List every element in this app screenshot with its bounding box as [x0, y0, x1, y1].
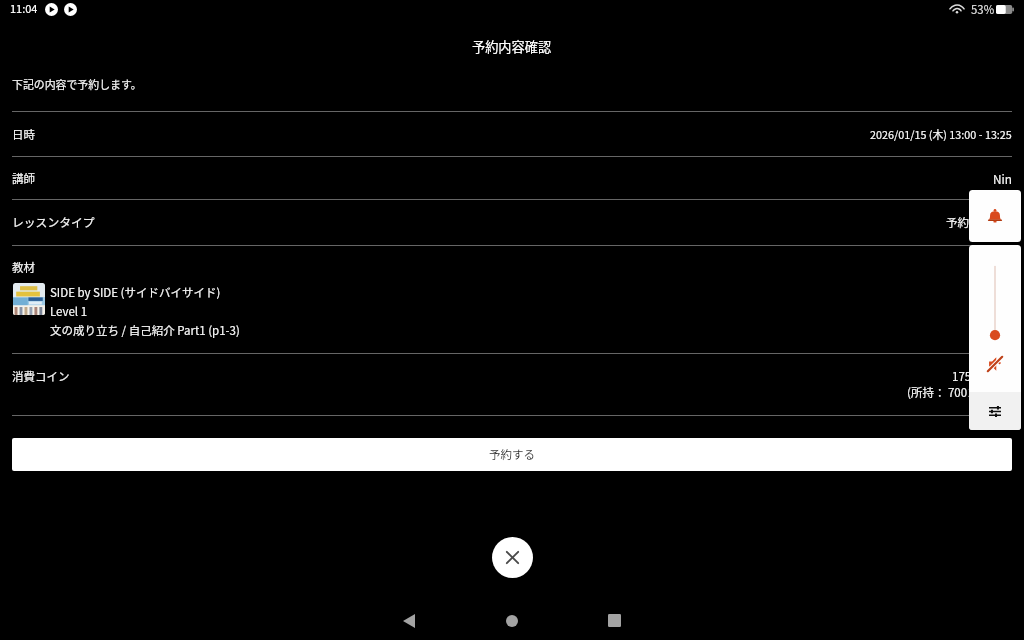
staticText: 2026/01/15 (木) 13:00 - 13:25: [870, 126, 1012, 142]
staticText: 予約内容確認: [472, 37, 552, 56]
staticText: Level 1: [50, 303, 88, 320]
staticText: (所持： 700コイン): [907, 384, 1006, 401]
button[interactable]: 予約する: [12, 438, 1012, 471]
staticText: 教材: [12, 259, 35, 276]
staticText: 下記の内容で予約します。: [12, 76, 142, 92]
staticText: 53%: [971, 1, 995, 18]
staticText: Nin: [993, 170, 1012, 187]
button[interactable]: Recent apps: [563, 600, 665, 640]
staticText: 消費コイン: [12, 368, 70, 385]
staticText: 講師: [12, 170, 35, 187]
staticText: レッスンタイプ: [12, 213, 95, 230]
button[interactable]: Sound settings: [969, 392, 1021, 430]
staticText: SIDE by SIDE (サイドバイサイド): [50, 284, 221, 301]
staticText: 予約レッスン: [946, 214, 1015, 231]
staticText: 11:04: [10, 0, 38, 16]
button[interactable]: Back: [358, 600, 460, 640]
button[interactable]: Volume slider: [969, 245, 1021, 355]
staticText: 175コイン: [952, 368, 1006, 385]
staticText: 文の成り立ち / 自己紹介 Part1 (p1-3): [50, 322, 240, 339]
staticText: 予約する: [489, 446, 535, 463]
staticText: 日時: [12, 126, 35, 143]
button[interactable]: Home: [461, 600, 563, 640]
button[interactable]: Mute: [969, 356, 1021, 372]
button[interactable]: Ringer mode: [969, 190, 1021, 242]
button[interactable]: Close: [492, 537, 533, 578]
